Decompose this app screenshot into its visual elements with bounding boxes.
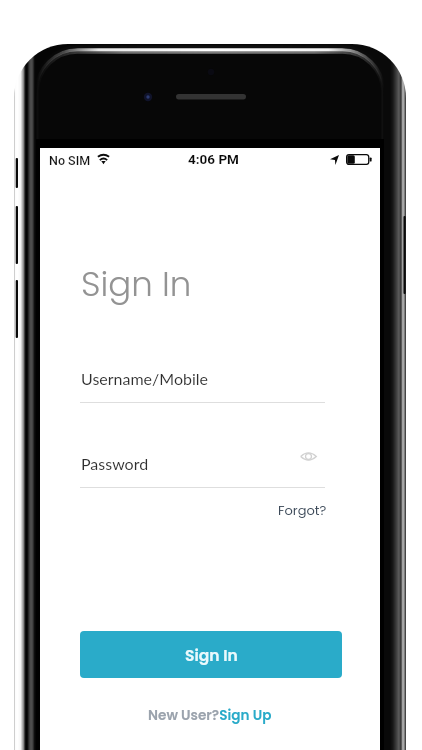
button[interactable]: Show password bbox=[295, 443, 321, 469]
button[interactable]: New User?Sign Up bbox=[148, 706, 272, 725]
button[interactable]: Forgot? bbox=[278, 501, 327, 519]
staticText: Sign In bbox=[185, 645, 238, 667]
staticText: 4:06 PM bbox=[188, 151, 239, 167]
staticText: Password bbox=[81, 454, 149, 473]
staticText: Username/Mobile bbox=[81, 369, 209, 388]
staticText: Sign In bbox=[81, 260, 192, 308]
staticText: No SIM bbox=[49, 153, 91, 168]
button[interactable]: Sign In bbox=[80, 631, 342, 678]
